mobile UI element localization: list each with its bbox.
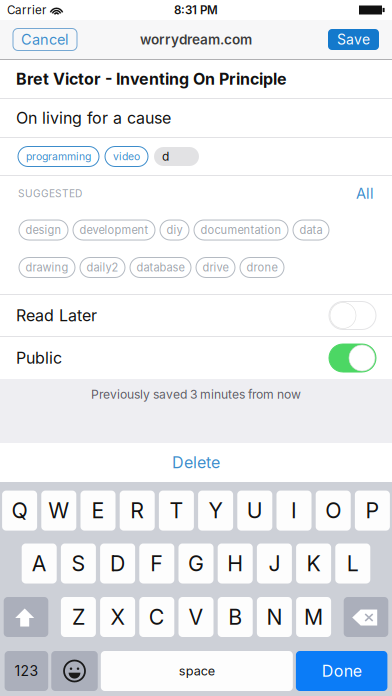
button[interactable]: O — [316, 491, 351, 531]
button[interactable]: V — [178, 597, 213, 637]
staticText: O — [325, 498, 341, 523]
staticText: video — [113, 150, 140, 163]
staticText: K — [307, 551, 321, 576]
button[interactable]: Emoji — [51, 651, 98, 691]
staticText: Previously saved 3 minutes from now — [91, 387, 301, 402]
button[interactable]: database — [130, 257, 191, 277]
button[interactable]: video — [105, 146, 148, 166]
button[interactable]: All — [356, 185, 374, 202]
staticText: D — [110, 551, 125, 576]
button[interactable]: C — [139, 597, 174, 637]
staticText: M — [304, 604, 323, 630]
staticText: F — [150, 551, 163, 576]
staticText: d — [162, 149, 169, 164]
button[interactable]: T — [159, 491, 194, 531]
button[interactable]: Delete — [0, 443, 392, 482]
staticText: Read Later — [16, 306, 97, 325]
button[interactable]: documentation — [194, 220, 288, 240]
button[interactable]: F — [139, 543, 174, 583]
button[interactable]: L — [335, 543, 370, 583]
staticText: drive — [202, 261, 228, 274]
button[interactable]: N — [257, 597, 292, 637]
button[interactable]: data — [293, 220, 329, 240]
staticText: J — [268, 551, 280, 576]
staticText: data — [299, 223, 322, 237]
staticText: X — [111, 604, 125, 630]
staticText: P — [365, 498, 379, 523]
staticText: G — [188, 551, 204, 576]
button[interactable]: Q — [2, 491, 37, 531]
button[interactable]: Shift — [4, 597, 48, 637]
button[interactable]: Y — [198, 491, 233, 531]
button[interactable]: E — [80, 491, 115, 531]
staticText: Z — [72, 604, 85, 630]
button[interactable]: diy — [160, 220, 189, 240]
staticText: 8:31 PM — [174, 3, 218, 17]
button[interactable]: design — [19, 220, 68, 240]
staticText: daily2 — [86, 261, 118, 274]
button[interactable]: Cancel — [13, 28, 77, 50]
button[interactable]: daily2 — [80, 257, 125, 277]
button[interactable]: U — [237, 491, 272, 531]
button[interactable]: development — [73, 220, 155, 240]
staticText: N — [266, 604, 282, 630]
staticText: Bret Victor - Inventing On Principle — [16, 69, 287, 89]
button[interactable]: space — [101, 651, 293, 691]
staticText: space — [179, 663, 215, 679]
staticText: L — [347, 551, 359, 576]
button[interactable]: Z — [61, 597, 96, 637]
staticText: R — [130, 498, 144, 523]
button[interactable]: 123 — [5, 651, 48, 691]
staticText: development — [79, 223, 148, 237]
button[interactable]: Save — [328, 29, 379, 50]
button[interactable]: A — [22, 543, 57, 583]
button[interactable]: D — [100, 543, 135, 583]
button[interactable]: I — [276, 491, 311, 531]
staticText: diy — [166, 223, 182, 237]
button[interactable]: Public — [0, 337, 392, 379]
staticText: T — [169, 498, 183, 523]
staticText: programming — [26, 150, 91, 163]
staticText: I — [291, 498, 297, 523]
button[interactable]: Read Later — [0, 295, 392, 336]
staticText: All — [356, 185, 374, 202]
staticText: Q — [12, 498, 28, 523]
staticText: SUGGESTED — [18, 187, 82, 200]
button[interactable]: J — [257, 543, 292, 583]
button[interactable]: P — [355, 491, 390, 531]
button[interactable]: B — [218, 597, 253, 637]
staticText: Y — [209, 498, 223, 523]
button[interactable]: R — [120, 491, 155, 531]
staticText: 123 — [14, 662, 38, 679]
button[interactable]: Done — [296, 651, 387, 691]
staticText: H — [227, 551, 243, 576]
button[interactable]: X — [100, 597, 135, 637]
button[interactable]: H — [218, 543, 253, 583]
staticText: W — [48, 498, 69, 523]
staticText: Public — [16, 348, 62, 368]
button[interactable]: Delete — [344, 597, 388, 637]
button[interactable]: G — [178, 543, 213, 583]
button[interactable]: programming — [18, 146, 99, 166]
staticText: E — [91, 498, 104, 523]
staticText: Delete — [172, 453, 220, 472]
button[interactable]: M — [296, 597, 331, 637]
staticText: Cancel — [21, 31, 69, 48]
button[interactable]: drawing — [19, 257, 75, 277]
staticText: documentation — [200, 223, 281, 237]
staticText: Carrier — [7, 3, 46, 17]
staticText: Save — [337, 31, 370, 48]
button[interactable]: W — [41, 491, 76, 531]
staticText: drawing — [25, 261, 68, 274]
staticText: C — [149, 604, 165, 630]
button[interactable]: S — [61, 543, 96, 583]
staticText: database — [136, 261, 184, 274]
staticText: Done — [322, 661, 362, 681]
button[interactable]: drone — [240, 257, 284, 277]
staticText: A — [32, 551, 47, 576]
staticText: design — [25, 223, 61, 237]
button[interactable]: drive — [196, 257, 235, 277]
staticText: worrydream.com — [140, 31, 252, 48]
staticText: drone — [246, 261, 277, 274]
button[interactable]: K — [296, 543, 331, 583]
